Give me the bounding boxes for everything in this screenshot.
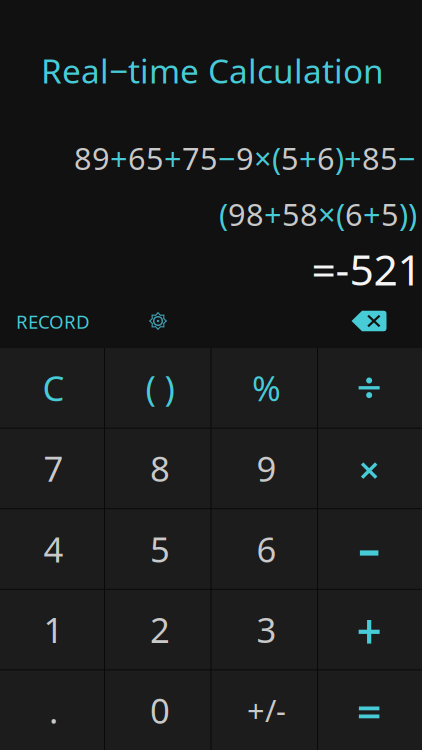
- button[interactable]: C: [0, 348, 104, 428]
- staticText: 75: [182, 138, 218, 178]
- button[interactable]: RECORD: [16, 309, 90, 334]
- staticText: =-521: [311, 241, 421, 297]
- button[interactable]: Settings: [149, 312, 167, 330]
- button[interactable]: 7: [0, 429, 104, 508]
- staticText: (: [272, 138, 281, 178]
- staticText: ×: [254, 138, 272, 178]
- staticText: +: [299, 138, 317, 178]
- button[interactable]: 5: [105, 509, 210, 589]
- staticText: 58: [282, 194, 318, 234]
- staticText: 5: [381, 194, 399, 234]
- staticText: ): [399, 194, 408, 234]
- staticText: %: [252, 365, 281, 411]
- staticText: 7: [43, 445, 63, 491]
- staticText: 1: [43, 607, 63, 653]
- staticText: C: [42, 365, 64, 411]
- button[interactable]: [318, 429, 422, 508]
- staticText: +: [164, 138, 182, 178]
- staticText: RECORD: [16, 309, 90, 334]
- staticText: −: [398, 138, 416, 178]
- staticText: +/-: [247, 690, 286, 730]
- staticText: 5: [281, 138, 299, 178]
- staticText: ×: [318, 194, 336, 234]
- staticText: 4: [43, 526, 63, 572]
- button[interactable]: 4: [0, 509, 104, 589]
- staticText: 85: [362, 138, 398, 178]
- button[interactable]: [318, 670, 422, 750]
- button[interactable]: [318, 509, 422, 589]
- button[interactable]: 1: [0, 590, 104, 669]
- staticText: 8: [150, 445, 170, 491]
- button[interactable]: 6: [211, 509, 317, 589]
- staticText: +: [264, 194, 282, 234]
- staticText: ): [408, 194, 417, 234]
- button[interactable]: .: [0, 670, 104, 750]
- staticText: 0: [150, 687, 170, 733]
- staticText: .: [49, 687, 58, 733]
- button[interactable]: 3: [211, 590, 317, 669]
- button[interactable]: 0: [105, 670, 210, 750]
- staticText: 3: [256, 607, 276, 653]
- button[interactable]: +/-: [211, 670, 317, 750]
- button[interactable]: ( ): [105, 348, 210, 428]
- button[interactable]: %: [211, 348, 317, 428]
- button[interactable]: [318, 348, 422, 428]
- staticText: (: [336, 194, 345, 234]
- staticText: −: [218, 138, 236, 178]
- staticText: 6: [256, 526, 276, 572]
- staticText: (: [219, 194, 228, 234]
- button[interactable]: 9: [211, 429, 317, 508]
- button[interactable]: 8: [105, 429, 210, 508]
- staticText: 9: [236, 138, 254, 178]
- staticText: 89: [74, 138, 110, 178]
- staticText: +: [344, 138, 362, 178]
- staticText: 65: [128, 138, 164, 178]
- staticText: 2: [150, 607, 170, 653]
- button[interactable]: Delete: [351, 311, 386, 331]
- staticText: 6: [317, 138, 335, 178]
- staticText: +: [110, 138, 128, 178]
- staticText: Real−time Calculation: [41, 48, 384, 93]
- button[interactable]: [318, 590, 422, 669]
- staticText: 98: [228, 194, 264, 234]
- button[interactable]: 2: [105, 590, 210, 669]
- staticText: ): [335, 138, 344, 178]
- staticText: ( ): [145, 365, 174, 411]
- staticText: +: [363, 194, 381, 234]
- staticText: 6: [345, 194, 363, 234]
- staticText: 5: [150, 526, 170, 572]
- staticText: 9: [256, 445, 276, 491]
